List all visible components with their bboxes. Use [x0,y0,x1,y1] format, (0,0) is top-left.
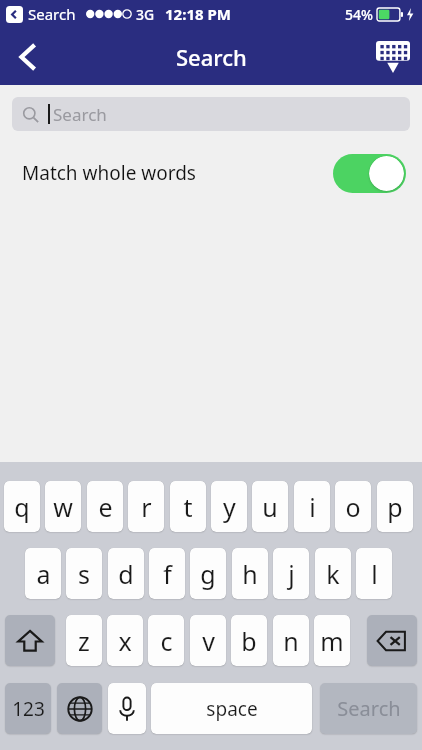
staticText: i [309,490,316,524]
staticText: p [387,490,403,524]
staticText: f [163,557,172,591]
staticText: 123 [12,696,45,722]
button[interactable]: m [314,615,350,666]
staticText: b [241,624,257,658]
button[interactable]: q [4,481,40,532]
button[interactable]: 123 [5,683,51,734]
button[interactable]: k [315,548,351,599]
button[interactable]: l [356,548,392,599]
staticText: s [78,557,90,591]
staticText: 12:18 PM [165,4,231,24]
staticText: Search [53,103,107,126]
staticText: g [200,557,216,591]
button[interactable]: space [151,683,312,734]
staticText: o [345,490,361,524]
button[interactable]: Next keyboard [57,683,102,734]
staticText: u [262,490,278,524]
button[interactable]: x [107,615,143,666]
button[interactable]: h [232,548,268,599]
button[interactable]: y [211,481,247,532]
button[interactable]: u [252,481,288,532]
button[interactable]: Back [0,28,56,85]
staticText: v [202,624,215,658]
button[interactable]: Hide keyboard [364,28,422,85]
staticText: h [242,557,258,591]
staticText: r [141,490,152,524]
button[interactable]: n [273,615,309,666]
staticText: q [14,490,30,524]
button[interactable]: Shift [5,615,55,666]
button[interactable]: w [45,481,81,532]
button[interactable]: Delete [367,615,417,666]
staticText: Search [337,695,401,722]
button[interactable]: s [66,548,102,599]
staticText: Search [176,42,247,72]
staticText: Search [28,4,76,24]
staticText: space [206,696,258,722]
button[interactable]: g [190,548,226,599]
staticText: l [371,557,378,591]
staticText: w [53,490,73,524]
staticText: t [183,490,193,524]
staticText: m [320,624,344,658]
button[interactable]: p [377,481,413,532]
button[interactable]: Search [12,97,410,131]
staticText: z [78,624,90,658]
button[interactable]: c [148,615,184,666]
staticText: Match whole words [22,160,196,186]
button[interactable]: Match whole words [0,148,422,198]
staticText: x [118,624,132,658]
button[interactable]: Search [320,683,417,734]
staticText: c [160,624,173,658]
button[interactable]: o [335,481,371,532]
button[interactable]: v [190,615,226,666]
staticText: 54% [345,5,373,24]
button[interactable]: b [231,615,267,666]
staticText: a [36,557,51,591]
button[interactable]: j [273,548,309,599]
button[interactable]: z [66,615,102,666]
button[interactable]: i [294,481,330,532]
staticText: n [283,624,299,658]
button[interactable]: f [149,548,185,599]
button[interactable]: t [170,481,206,532]
staticText: y [223,490,236,524]
button[interactable]: r [128,481,164,532]
staticText: e [98,490,113,524]
button[interactable]: a [25,548,61,599]
button[interactable]: d [108,548,144,599]
staticText: k [326,557,340,591]
staticText: j [288,557,295,591]
staticText: d [118,557,134,591]
button[interactable]: Dictate [108,683,146,734]
button[interactable]: e [87,481,123,532]
staticText: 3G [136,5,155,24]
